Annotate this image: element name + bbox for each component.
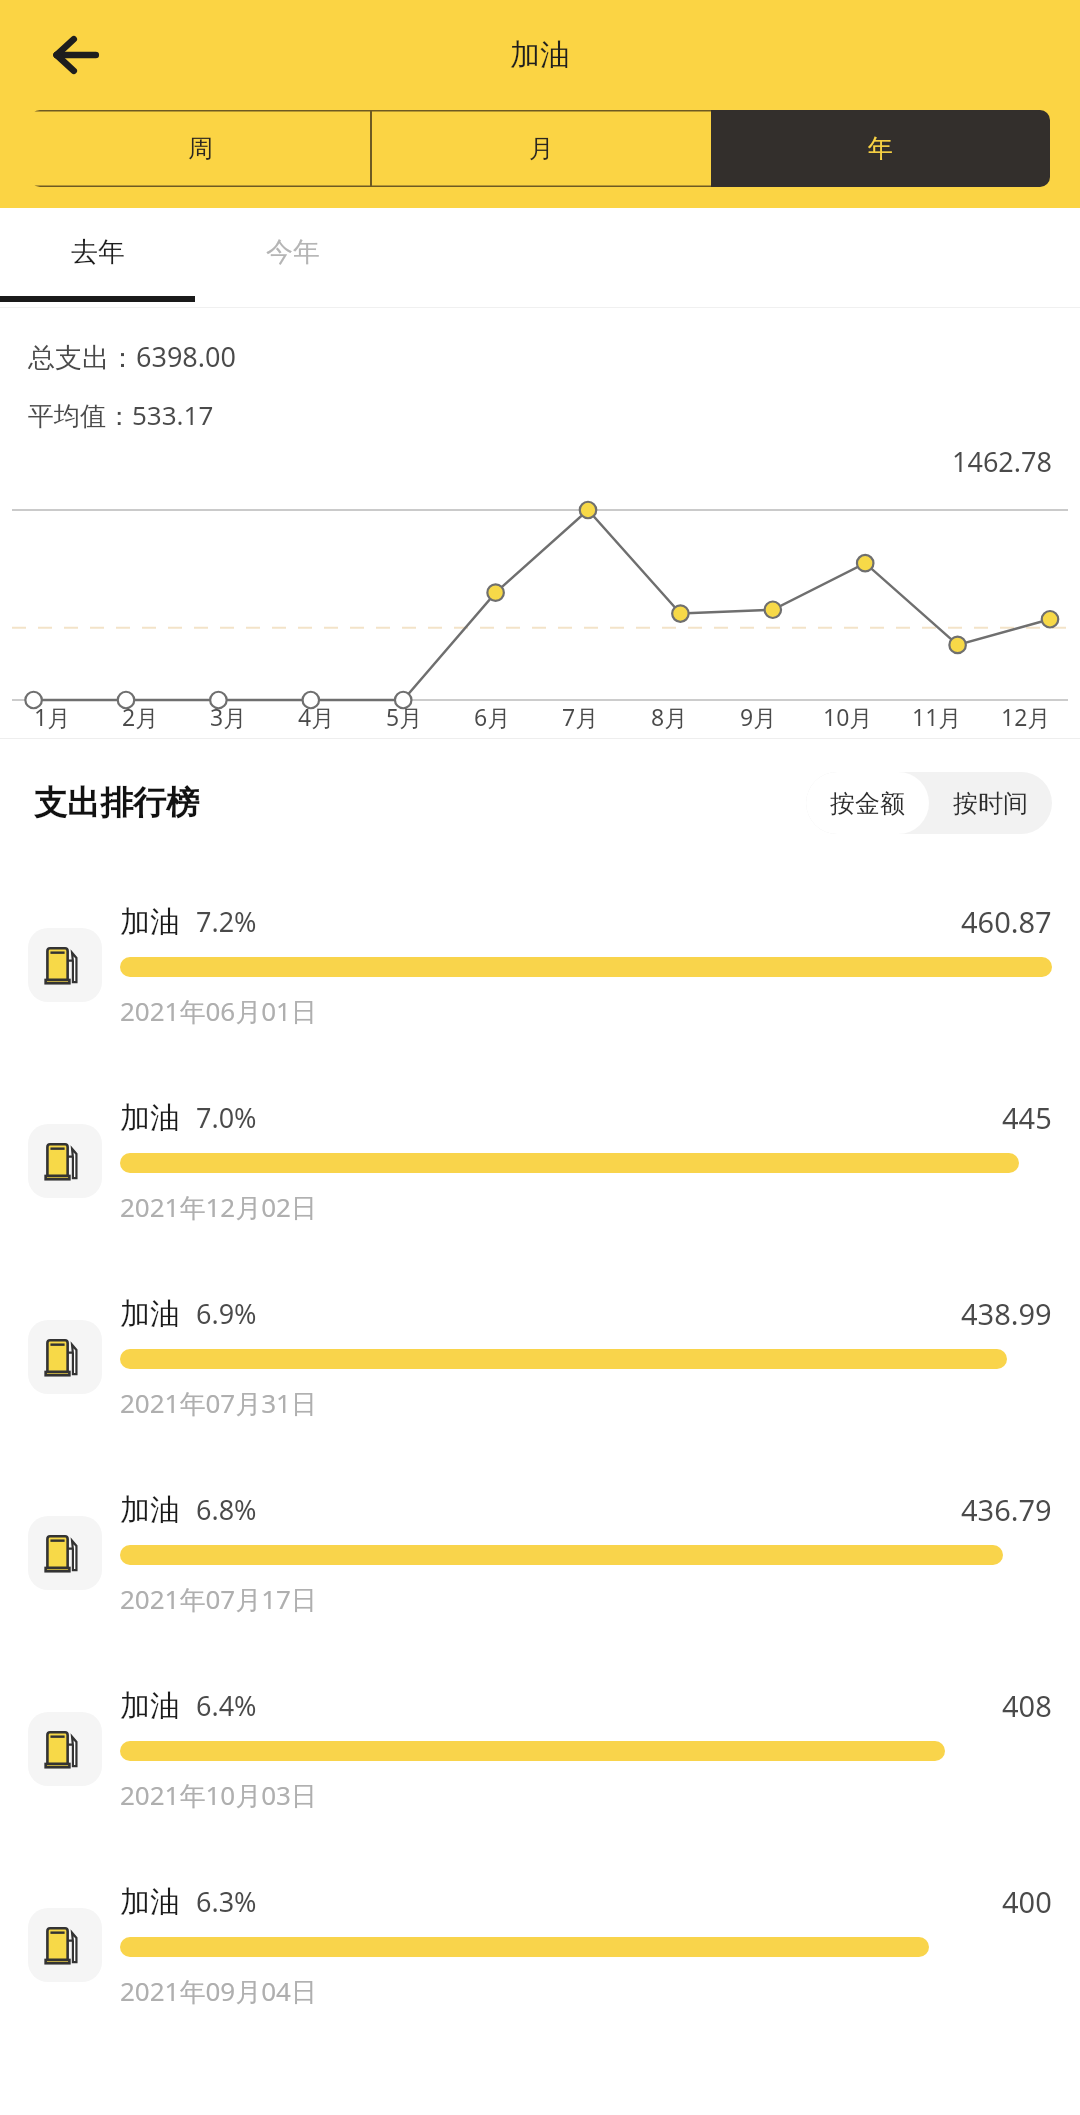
button[interactable]: 按时间 [953, 772, 1028, 834]
staticText: 4月 [298, 701, 335, 732]
button[interactable]: 按金额 [830, 772, 905, 834]
staticText: 总支出：6398.00 [28, 338, 236, 375]
button[interactable]: 加油 [0, 867, 1080, 1063]
staticText: 400 [1002, 1882, 1052, 1921]
staticText: 加油 [120, 1883, 180, 1921]
staticText: 2021年09月04日 [120, 1973, 317, 2009]
staticText: 加油 [120, 1099, 180, 1137]
staticText: 去年 [71, 235, 125, 269]
staticText: 7月 [562, 701, 599, 732]
staticText: 今年 [266, 235, 320, 269]
staticText: 8月 [651, 701, 688, 732]
staticText: 6.9% [196, 1295, 257, 1332]
button[interactable]: 去年 [0, 208, 195, 296]
staticText: 2021年07月31日 [120, 1385, 317, 1421]
staticText: 436.79 [961, 1490, 1052, 1529]
button[interactable]: 加油 [0, 1455, 1080, 1651]
button[interactable]: 加油 [0, 1063, 1080, 1259]
staticText: 445 [1002, 1098, 1052, 1137]
button[interactable]: 加油 [0, 1651, 1080, 1847]
staticText: 按金额 [830, 788, 905, 819]
staticText: 7.2% [196, 903, 257, 940]
staticText: 2021年06月01日 [120, 993, 317, 1029]
staticText: 按时间 [953, 788, 1028, 819]
button[interactable]: 年 [711, 110, 1050, 187]
staticText: 1462.78 [952, 443, 1052, 480]
staticText: 加油 [120, 1295, 180, 1333]
staticText: 6.4% [196, 1687, 257, 1724]
staticText: 1月 [34, 701, 71, 732]
staticText: 6.8% [196, 1491, 257, 1528]
staticText: 支出排行榜 [34, 782, 199, 824]
button[interactable]: 月 [372, 110, 711, 187]
staticText: 加油 [120, 903, 180, 941]
staticText: 加油 [510, 36, 570, 74]
button[interactable]: 加油 [0, 1259, 1080, 1455]
staticText: 2月 [122, 701, 159, 732]
staticText: 6.3% [196, 1883, 257, 1920]
staticText: 年 [868, 133, 893, 164]
staticText: 5月 [386, 701, 423, 732]
staticText: 408 [1002, 1686, 1052, 1725]
staticText: 6月 [474, 701, 511, 732]
staticText: 7.0% [196, 1099, 257, 1136]
staticText: 2021年07月17日 [120, 1581, 317, 1617]
button[interactable]: 今年 [195, 208, 390, 296]
staticText: 11月 [912, 701, 962, 732]
staticText: 10月 [823, 701, 873, 732]
staticText: 438.99 [961, 1294, 1052, 1333]
staticText: 2021年12月02日 [120, 1189, 317, 1225]
staticText: 2021年10月03日 [120, 1777, 317, 1813]
staticText: 平均值：533.17 [28, 397, 214, 433]
staticText: 加油 [120, 1687, 180, 1725]
staticText: 月 [529, 133, 554, 164]
button[interactable]: Back [28, 7, 124, 103]
staticText: 9月 [740, 701, 777, 732]
button[interactable]: 加油 [0, 1847, 1080, 2043]
staticText: 3月 [210, 701, 247, 732]
staticText: 周 [188, 133, 213, 164]
staticText: 460.87 [961, 902, 1052, 941]
button[interactable]: 周 [30, 110, 370, 187]
staticText: 12月 [1001, 701, 1051, 732]
staticText: 加油 [120, 1491, 180, 1529]
